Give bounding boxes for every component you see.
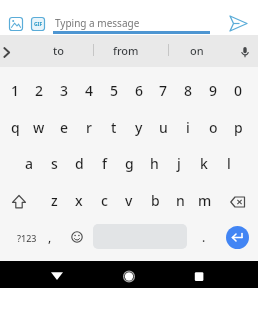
button[interactable]: b <box>142 189 168 211</box>
staticText: 6 <box>135 81 144 100</box>
staticText: k <box>200 154 208 173</box>
button[interactable] <box>121 268 137 284</box>
staticText: ?123 <box>17 232 37 244</box>
button[interactable]: 8 <box>175 79 201 101</box>
staticText: 5 <box>110 81 119 100</box>
button[interactable]: from <box>101 39 151 62</box>
button[interactable]: , <box>37 226 63 248</box>
button[interactable] <box>8 193 30 211</box>
staticText: 7 <box>159 81 168 100</box>
staticText: m <box>198 191 212 210</box>
button[interactable]: c <box>91 189 117 211</box>
staticText: g <box>125 154 134 173</box>
button[interactable]: 0 <box>225 79 251 101</box>
staticText: e <box>60 118 69 137</box>
button[interactable]: Typing a message <box>55 14 205 31</box>
staticText: 9 <box>209 81 218 100</box>
button[interactable]: . <box>191 226 217 248</box>
staticText: 1 <box>11 81 20 100</box>
button[interactable]: w <box>26 116 52 138</box>
button[interactable]: u <box>150 116 176 138</box>
staticText: r <box>86 118 92 137</box>
button[interactable]: m <box>192 189 218 211</box>
staticText: i <box>186 118 190 137</box>
button[interactable]: ?123 <box>10 227 44 249</box>
button[interactable]: d <box>66 152 92 174</box>
button[interactable]: 5 <box>101 79 127 101</box>
button[interactable]: 4 <box>76 79 102 101</box>
staticText: p <box>234 118 243 137</box>
button[interactable]: n <box>167 189 193 211</box>
staticText: x <box>75 191 83 210</box>
button[interactable]: k <box>191 152 217 174</box>
staticText: u <box>159 118 168 137</box>
button[interactable]: to <box>33 39 83 62</box>
button[interactable] <box>226 226 249 249</box>
button[interactable]: s <box>41 152 67 174</box>
button[interactable] <box>69 229 85 245</box>
button[interactable]: y <box>126 116 152 138</box>
button[interactable]: a <box>16 152 42 174</box>
staticText: to <box>53 43 64 58</box>
staticText: v <box>125 191 133 210</box>
staticText: w <box>33 118 45 137</box>
staticText: o <box>209 118 218 137</box>
staticText: Typing a message <box>55 16 140 30</box>
button[interactable] <box>8 16 24 32</box>
staticText: s <box>51 154 58 173</box>
button[interactable]: v <box>116 189 142 211</box>
staticText: 8 <box>184 81 193 100</box>
staticText: 4 <box>85 81 94 100</box>
button[interactable]: l <box>216 152 242 174</box>
button[interactable]: 6 <box>126 79 152 101</box>
button[interactable]: 1 <box>2 79 28 101</box>
staticText: d <box>75 154 84 173</box>
button[interactable]: e <box>51 116 77 138</box>
button[interactable]: q <box>2 116 28 138</box>
staticText: . <box>202 229 206 245</box>
button[interactable]: 3 <box>51 79 77 101</box>
staticText: c <box>101 191 108 210</box>
staticText: z <box>51 191 58 210</box>
staticText: 2 <box>35 81 44 100</box>
button[interactable]: g <box>116 152 142 174</box>
button[interactable]: 7 <box>150 79 176 101</box>
button[interactable]: 2 <box>26 79 52 101</box>
button[interactable] <box>0 44 14 60</box>
staticText: l <box>227 154 231 173</box>
button[interactable]: GIF <box>30 16 46 32</box>
button[interactable]: j <box>166 152 192 174</box>
button[interactable]: f <box>91 152 117 174</box>
button[interactable] <box>227 193 249 211</box>
button[interactable]: r <box>76 116 102 138</box>
staticText: y <box>135 118 143 137</box>
staticText: f <box>102 154 107 173</box>
staticText: 3 <box>60 81 69 100</box>
button[interactable]: o <box>200 116 226 138</box>
staticText: j <box>177 154 181 173</box>
button[interactable]: x <box>66 189 92 211</box>
button[interactable] <box>238 46 252 59</box>
button[interactable]: z <box>41 189 67 211</box>
staticText: GIF <box>34 21 43 28</box>
button[interactable] <box>191 268 207 284</box>
staticText: on <box>190 43 204 58</box>
button[interactable] <box>49 268 65 284</box>
staticText: n <box>176 191 185 210</box>
staticText: q <box>11 118 20 137</box>
button[interactable]: t <box>101 116 127 138</box>
button[interactable]: on <box>172 39 222 62</box>
staticText: 0 <box>234 81 243 100</box>
button[interactable]: 9 <box>200 79 226 101</box>
staticText: a <box>25 154 34 173</box>
staticText: t <box>111 118 117 137</box>
staticText: b <box>151 191 160 210</box>
staticText: from <box>113 43 139 58</box>
button[interactable]: i <box>175 116 201 138</box>
staticText: h <box>150 154 159 173</box>
button[interactable]: p <box>225 116 251 138</box>
staticText: , <box>48 229 52 245</box>
button[interactable] <box>227 13 249 34</box>
button[interactable]: h <box>141 152 167 174</box>
